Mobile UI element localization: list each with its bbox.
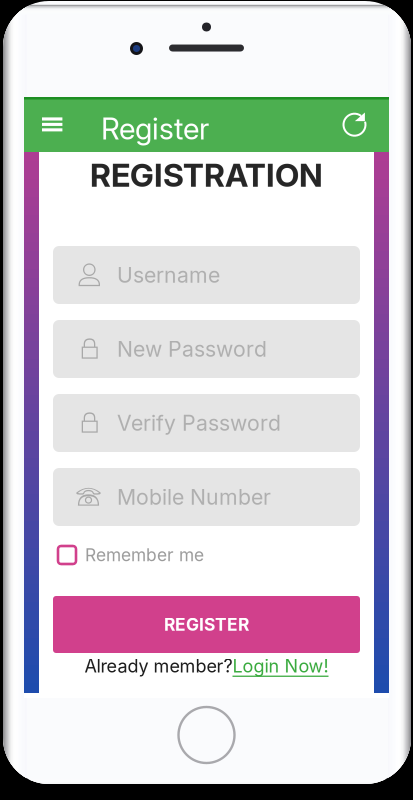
button[interactable]: Username	[53, 246, 360, 304]
staticText: Verify Password	[117, 410, 281, 436]
staticText: Already member?	[84, 655, 232, 677]
staticText: Login Now!	[232, 655, 328, 677]
staticText: REGISTER	[164, 614, 249, 635]
button[interactable]: New Password	[53, 320, 360, 378]
button[interactable]: Verify Password	[53, 394, 360, 452]
staticText: Remember me	[85, 544, 204, 565]
staticText: Register	[101, 111, 209, 146]
button[interactable]: Mobile Number	[53, 468, 360, 526]
button[interactable]: Menu	[32, 107, 72, 141]
button[interactable]: Remember me	[58, 543, 258, 567]
staticText: REGISTRATION	[90, 156, 323, 194]
button[interactable]: Refresh	[333, 103, 376, 146]
staticText: Username	[117, 262, 220, 288]
staticText: New Password	[117, 336, 267, 362]
button[interactable]: REGISTER	[53, 596, 360, 653]
button[interactable]: Login Now!	[232, 655, 328, 677]
staticText: Mobile Number	[117, 484, 271, 510]
